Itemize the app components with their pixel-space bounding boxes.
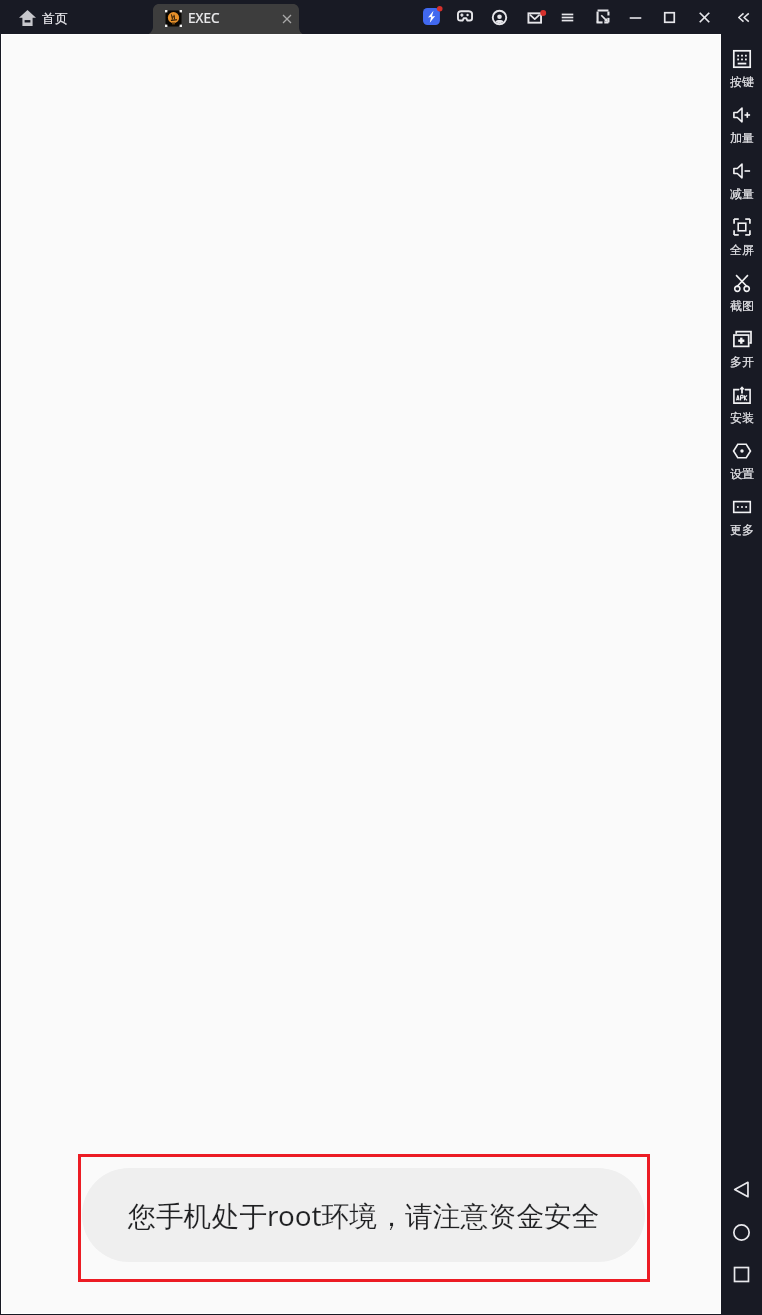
staticText: 截图 [730,298,754,313]
button[interactable]: Recent apps [733,1266,750,1283]
staticText: 按键 [730,74,754,89]
staticText: 更多 [730,522,754,537]
button[interactable]: 加量 [722,100,762,152]
button[interactable]: Close [696,9,713,26]
button[interactable]: Messages [527,9,545,27]
button[interactable]: 减量 [722,156,762,208]
button[interactable]: Accelerate [423,7,441,25]
button[interactable]: 全屏 [722,212,762,264]
button[interactable]: Minimize [627,9,644,26]
staticText: 减量 [730,186,754,201]
button[interactable]: Collapse sidebar [734,9,751,26]
staticText: 全屏 [730,242,754,257]
button[interactable]: 您手机处于root环境，请注意资金安全 [82,1168,645,1262]
staticText: 安装 [730,410,754,425]
button[interactable]: EXEC [145,4,307,35]
button[interactable]: 多开 [722,324,762,376]
staticText: EXEC [188,9,220,27]
button[interactable]: 截图 [722,268,762,320]
button[interactable]: Close tab [279,11,295,27]
button[interactable]: Maximize [661,9,678,26]
staticText: 您手机处于root环境，请注意资金安全 [128,1196,600,1234]
button[interactable]: 安装 [722,380,762,432]
button[interactable]: Back [733,1181,750,1198]
staticText: 设置 [730,466,754,481]
button[interactable]: Home [733,1224,750,1241]
button[interactable]: Menu [559,9,576,26]
button[interactable]: 更多 [722,492,762,544]
staticText: 加量 [730,130,754,145]
button[interactable]: Account [491,9,508,26]
button[interactable]: Games [457,8,473,24]
staticText: 多开 [730,354,754,369]
button[interactable]: 按键 [722,44,762,96]
button[interactable]: Restore down [595,9,611,25]
button[interactable]: 首页 [19,1,68,35]
staticText: 首页 [42,10,68,26]
button[interactable]: 设置 [722,436,762,488]
